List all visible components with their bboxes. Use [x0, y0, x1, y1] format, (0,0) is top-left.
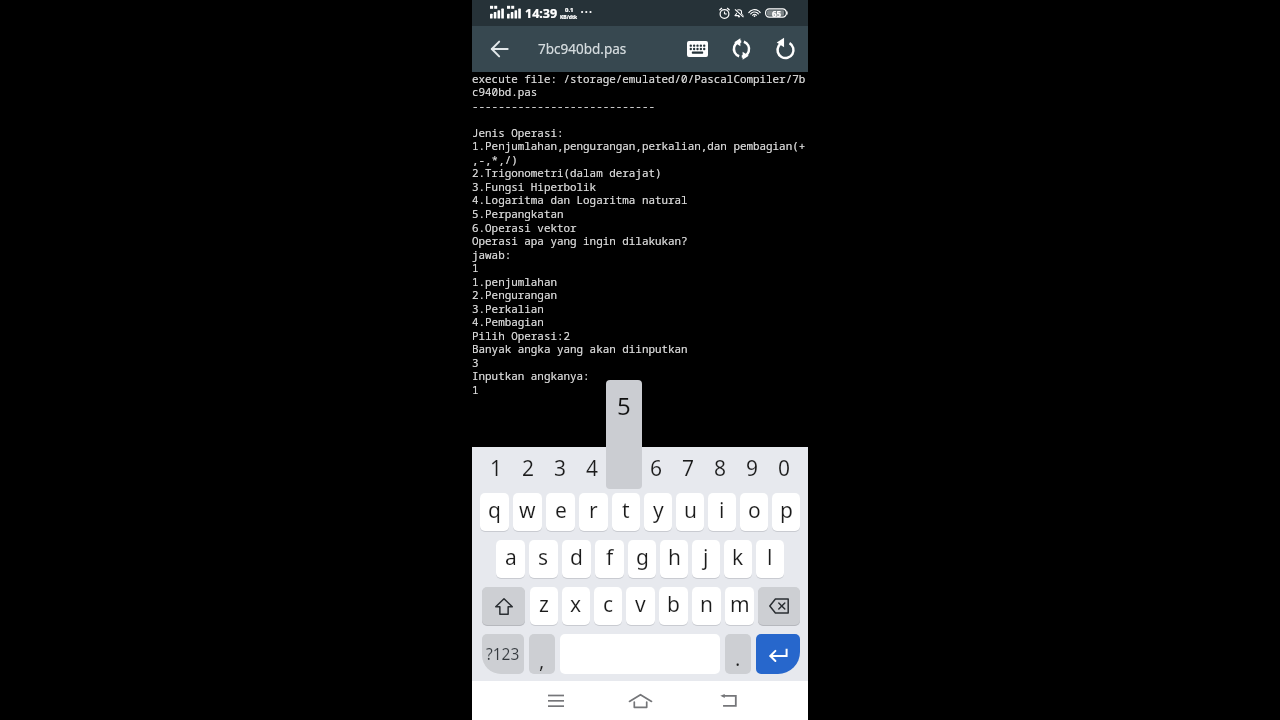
button[interactable]: x [562, 587, 590, 625]
button[interactable]: f [595, 540, 624, 578]
button[interactable]: r [579, 493, 608, 531]
staticText: 65 [772, 8, 782, 19]
staticText: 2.Trigonometri(dalam derajat) [472, 165, 662, 180]
button[interactable]: 0 [768, 447, 800, 489]
button[interactable]: u [676, 493, 704, 531]
button[interactable]: p [772, 493, 800, 531]
staticText: KB/dtk [560, 14, 578, 21]
staticText: m [730, 590, 750, 619]
button[interactable]: q [480, 493, 509, 531]
button[interactable]: d [562, 540, 591, 578]
button[interactable]: h [660, 540, 688, 578]
button[interactable]: . [725, 634, 751, 674]
staticText: 3 [472, 355, 479, 370]
staticText: Banyak angka yang akan diinputkan [472, 341, 688, 356]
staticText: 1 [490, 454, 503, 483]
staticText: q [488, 496, 501, 525]
button[interactable]: 4 [576, 447, 608, 489]
button[interactable]: Restart [763, 26, 807, 72]
button[interactable]: 6 [640, 447, 672, 489]
staticText: c [603, 590, 614, 619]
staticText: 2.Pengurangan [472, 287, 557, 302]
button[interactable]: 3 [544, 447, 576, 489]
button[interactable]: m [725, 587, 754, 625]
button[interactable]: 8 [704, 447, 736, 489]
button[interactable]: Home [612, 681, 668, 720]
staticText: n [700, 590, 713, 619]
staticText: 5 [617, 389, 631, 422]
staticText: w [519, 496, 536, 525]
staticText: 14:39 [525, 5, 558, 22]
staticText: Pilih Operasi:2 [472, 328, 571, 343]
staticText: f [606, 543, 614, 572]
staticText: s [538, 543, 549, 572]
staticText: 0.1 [565, 6, 574, 14]
button[interactable]: i [708, 493, 736, 531]
button[interactable]: t [612, 493, 640, 531]
staticText: 1 [472, 260, 479, 275]
staticText: y [653, 496, 664, 525]
button[interactable]: Shift [482, 587, 525, 625]
staticText: z [539, 590, 549, 619]
staticText: 5.Perpangkatan [472, 206, 564, 221]
button[interactable]: k [724, 540, 752, 578]
staticText: t [622, 496, 630, 525]
staticText: 8 [714, 454, 727, 483]
button[interactable]: 7 [672, 447, 704, 489]
button[interactable]: o [740, 493, 768, 531]
button[interactable]: Backspace [758, 587, 800, 625]
button[interactable]: b [659, 587, 688, 625]
staticText: 4.Pembagian [472, 314, 544, 329]
staticText: 7 [682, 454, 695, 483]
button[interactable]: v [626, 587, 655, 625]
staticText: i [719, 496, 725, 525]
staticText: jawab: [472, 247, 512, 262]
staticText: 2 [522, 454, 535, 483]
button[interactable]: y [644, 493, 672, 531]
button[interactable]: w [513, 493, 542, 531]
button[interactable]: j [692, 540, 720, 578]
button[interactable]: , [529, 634, 555, 674]
button[interactable]: l [756, 540, 784, 578]
staticText: j [703, 543, 709, 572]
staticText: l [767, 543, 773, 572]
button[interactable]: s [529, 540, 558, 578]
staticText: x [570, 590, 582, 619]
staticText: 3 [554, 454, 567, 483]
staticText: a [505, 543, 517, 572]
staticText: 6 [650, 454, 663, 483]
staticText: 3.Fungsi Hiperbolik [472, 179, 597, 194]
button[interactable]: 9 [736, 447, 768, 489]
button[interactable]: z [530, 587, 558, 625]
staticText: p [780, 496, 793, 525]
staticText: Operasi apa yang ingin dilakukan? [472, 233, 688, 248]
staticText: execute file: /storage/emulated/0/Pascal… [472, 71, 806, 86]
staticText: 4.Logaritma dan Logaritma natural [472, 192, 688, 207]
staticText: k [732, 543, 744, 572]
staticText: 1.penjumlahan [472, 274, 557, 289]
button[interactable]: Recent apps [528, 681, 584, 720]
staticText: ---------------------------- [472, 98, 655, 113]
button[interactable]: Keyboard [675, 26, 719, 72]
button[interactable]: e [546, 493, 575, 531]
button[interactable]: 2 [512, 447, 544, 489]
staticText: . [735, 645, 741, 672]
staticText: ,-,*,/) [472, 152, 518, 167]
staticText: e [555, 496, 567, 525]
button[interactable]: c [594, 587, 622, 625]
button[interactable]: g [628, 540, 656, 578]
button[interactable]: ?123 [482, 634, 524, 674]
button[interactable]: a [496, 540, 525, 578]
staticText: 9 [746, 454, 759, 483]
button[interactable]: n [692, 587, 721, 625]
button[interactable]: 1 [480, 447, 512, 489]
button[interactable]: Sync [719, 26, 763, 72]
button[interactable]: Back [475, 26, 523, 72]
staticText: b [667, 590, 680, 619]
staticText: , [539, 647, 545, 674]
button[interactable]: Enter [756, 634, 800, 674]
button[interactable]: Back [700, 681, 756, 720]
